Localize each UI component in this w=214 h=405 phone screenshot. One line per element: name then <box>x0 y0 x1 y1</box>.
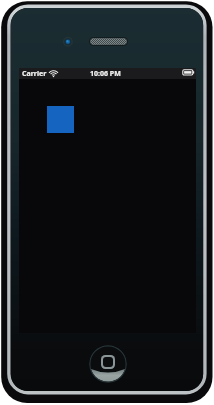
button[interactable]: Home <box>89 345 127 383</box>
staticText: 10:06 PM <box>90 69 121 79</box>
staticText: Carrier <box>22 69 47 79</box>
